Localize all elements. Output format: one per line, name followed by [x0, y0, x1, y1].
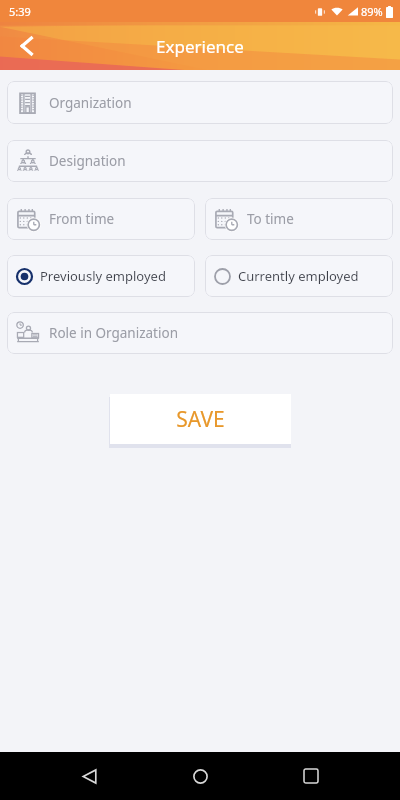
staticText: Role in Organization — [49, 324, 178, 342]
button[interactable]: Designation — [7, 140, 393, 182]
button[interactable]: Home — [178, 754, 222, 798]
staticText: 89% — [361, 4, 383, 19]
staticText: SAVE — [176, 405, 225, 434]
button[interactable]: Organization — [7, 81, 393, 124]
button[interactable]: Back — [6, 25, 48, 67]
staticText: To time — [247, 210, 294, 228]
button[interactable]: Back — [67, 754, 111, 798]
button[interactable]: Role in Organization — [7, 312, 393, 354]
button[interactable]: Currently employed — [205, 255, 393, 297]
button[interactable]: To time — [205, 198, 393, 240]
button[interactable]: Previously employed — [7, 255, 195, 297]
staticText: Experience — [156, 35, 244, 58]
button[interactable]: From time — [7, 198, 195, 240]
staticText: Organization — [49, 94, 132, 112]
staticText: From time — [49, 210, 115, 228]
staticText: 5:39 — [9, 4, 31, 19]
staticText: Previously employed — [40, 267, 166, 285]
staticText: Designation — [49, 152, 126, 170]
staticText: Currently employed — [238, 267, 359, 285]
button[interactable]: Recent apps — [289, 754, 333, 798]
button[interactable]: SAVE — [110, 394, 291, 444]
